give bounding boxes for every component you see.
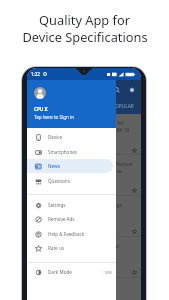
staticText: OnePlus 8 Pro and the OnePlus 7 Pro go xyxy=(28,202,123,209)
staticText: Tap here to Sign in xyxy=(34,114,75,120)
staticText: POPULAR xyxy=(112,103,134,110)
staticText: Pro ahead of the global release xyxy=(28,134,102,141)
button[interactable]: Device xyxy=(27,130,113,144)
button[interactable]: Settings xyxy=(126,84,137,95)
staticText: Settings xyxy=(48,202,66,208)
staticText: Questions xyxy=(48,178,70,184)
staticText: 65W fast charging on the new Xiaomi Mi 1… xyxy=(28,127,130,134)
button[interactable]: Dark Mode xyxy=(27,265,113,279)
button[interactable]: Help & Feedback xyxy=(27,227,113,241)
button[interactable]: Remove Ads xyxy=(27,212,113,226)
staticText: Official teaser video confirms support f… xyxy=(28,120,125,127)
button[interactable]: Smartphones xyxy=(27,145,113,159)
staticText: Help & Feedback xyxy=(48,231,85,237)
button[interactable]: Search xyxy=(111,84,122,95)
button[interactable]: Settings xyxy=(27,198,113,212)
staticText: Samsung Galaxy S20 Ultra units are affec… xyxy=(28,161,132,168)
staticText: colour accuracy and battery xyxy=(28,250,94,257)
button[interactable]: Rate us xyxy=(27,241,113,255)
staticText: News xyxy=(48,163,61,169)
staticText: Rate us xyxy=(48,245,64,251)
staticText: Remove Ads xyxy=(48,216,75,222)
staticText: Device xyxy=(48,134,63,140)
staticText: Dark Mode xyxy=(48,269,72,275)
staticText: by an autofocus problem in the cameras xyxy=(28,168,123,175)
staticText: Quality App for xyxy=(39,11,130,28)
staticText: Huawei P40 Pro full display analysis for xyxy=(28,243,120,250)
button[interactable]: Questions xyxy=(27,174,113,188)
staticText: 1:22 xyxy=(31,71,40,77)
staticText: CPU X xyxy=(34,106,48,112)
staticText: Device Specifications xyxy=(22,28,148,45)
button[interactable]: News xyxy=(27,159,113,173)
staticText: Smartphones xyxy=(48,149,78,155)
